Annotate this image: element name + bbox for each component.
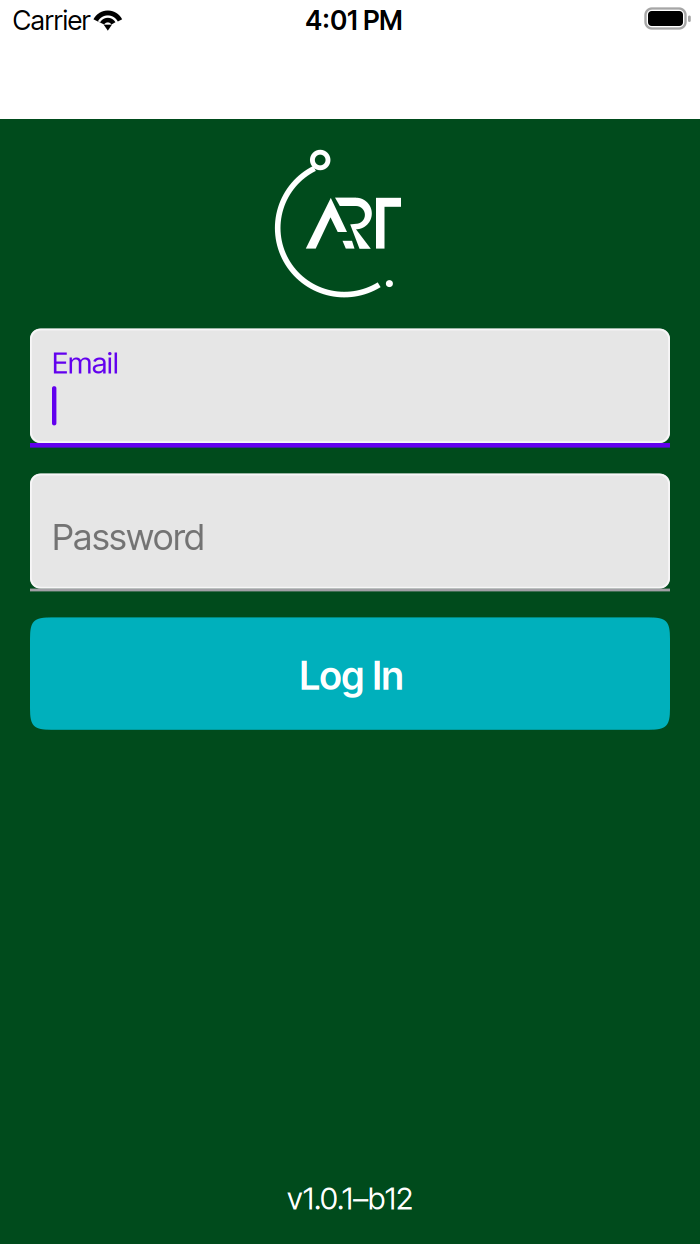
- staticText: Password: [52, 515, 204, 559]
- staticText: v1.0.1–b12: [287, 1180, 413, 1217]
- staticText: Carrier: [13, 4, 91, 36]
- staticText: 4:01 PM: [305, 4, 402, 36]
- staticText: Email: [52, 345, 119, 381]
- button[interactable]: Password: [30, 474, 670, 591]
- staticText: Log In: [299, 652, 403, 699]
- button[interactable]: Email: [30, 329, 670, 448]
- button[interactable]: Log In: [30, 617, 670, 730]
